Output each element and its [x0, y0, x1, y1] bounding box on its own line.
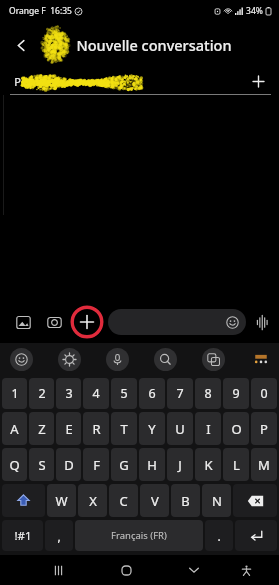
- button[interactable]: Accessibility: [234, 558, 258, 582]
- button[interactable]: C: [109, 484, 138, 517]
- staticText: 6: [148, 385, 156, 402]
- staticText: L: [233, 456, 240, 474]
- button[interactable]: Emoji: [223, 313, 241, 331]
- staticText: !#1: [14, 528, 32, 544]
- button[interactable]: X: [78, 484, 107, 517]
- button[interactable]: Z: [29, 412, 54, 445]
- staticText: 7: [176, 385, 184, 402]
- staticText: 8: [204, 385, 212, 402]
- staticText: 2: [38, 385, 46, 402]
- staticText: 1: [11, 385, 19, 402]
- staticText: ,: [57, 528, 61, 544]
- button[interactable]: settings: [58, 348, 81, 371]
- staticText: P: [260, 420, 268, 438]
- button[interactable]: Gallery: [10, 309, 36, 335]
- staticText: H: [147, 456, 157, 474]
- staticText: P: [14, 74, 21, 89]
- button[interactable]: !#1: [2, 520, 43, 551]
- button[interactable]: S: [29, 448, 54, 481]
- button[interactable]: 0: [251, 378, 277, 409]
- button[interactable]: 7: [167, 378, 193, 409]
- button[interactable]: R: [83, 412, 109, 445]
- staticText: 4: [92, 385, 100, 402]
- button[interactable]: More keyboard options: [250, 349, 272, 371]
- button[interactable]: Q: [2, 448, 27, 481]
- staticText: X: [89, 492, 97, 510]
- staticText: Z: [38, 420, 46, 438]
- button[interactable]: K: [195, 448, 221, 481]
- button[interactable]: Back: [6, 30, 36, 60]
- staticText: E: [65, 420, 73, 438]
- button[interactable]: T: [111, 412, 137, 445]
- staticText: M: [258, 456, 270, 474]
- button[interactable]: Shift: [2, 484, 45, 517]
- button[interactable]: U: [167, 412, 193, 445]
- button[interactable]: Y: [139, 412, 165, 445]
- button[interactable]: Recents: [45, 557, 71, 583]
- button[interactable]: W: [47, 484, 76, 517]
- staticText: O: [231, 420, 242, 438]
- button[interactable]: 5: [111, 378, 137, 409]
- button[interactable]: 6: [139, 378, 165, 409]
- button[interactable]: E: [56, 412, 81, 445]
- button[interactable]: 1: [2, 378, 27, 409]
- staticText: I: [206, 420, 211, 438]
- button[interactable]: Space: [75, 520, 203, 551]
- button[interactable]: G: [111, 448, 137, 481]
- staticText: J: [178, 456, 182, 474]
- button[interactable]: Emoji: [108, 309, 246, 335]
- button[interactable]: B: [171, 484, 200, 517]
- button[interactable]: N: [202, 484, 231, 517]
- button[interactable]: Voice message: [250, 310, 274, 334]
- button[interactable]: More attachments: [70, 305, 104, 339]
- staticText: R: [92, 420, 101, 438]
- staticText: W: [55, 492, 68, 510]
- staticText: 0: [260, 385, 268, 402]
- button[interactable]: 3: [56, 378, 81, 409]
- button[interactable]: mic: [106, 348, 129, 371]
- button[interactable]: 2: [29, 378, 54, 409]
- button[interactable]: V: [140, 484, 169, 517]
- staticText: G: [119, 456, 129, 474]
- button[interactable]: F: [83, 448, 109, 481]
- button[interactable]: P: [0, 68, 246, 94]
- button[interactable]: L: [223, 448, 249, 481]
- button[interactable]: 9: [223, 378, 249, 409]
- button[interactable]: emoji: [10, 348, 33, 371]
- button[interactable]: Add recipient: [246, 69, 270, 93]
- button[interactable]: I: [195, 412, 221, 445]
- staticText: Orange F 16:35: [9, 5, 72, 17]
- button[interactable]: search: [154, 348, 177, 371]
- staticText: Y: [148, 420, 156, 438]
- button[interactable]: Enter: [235, 520, 277, 551]
- button[interactable]: J: [167, 448, 193, 481]
- staticText: V: [151, 492, 159, 510]
- button[interactable]: D: [56, 448, 81, 481]
- button[interactable]: Home: [113, 557, 139, 583]
- button[interactable]: ,: [45, 520, 73, 551]
- button[interactable]: P: [251, 412, 277, 445]
- staticText: U: [175, 420, 185, 438]
- button[interactable]: 4: [83, 378, 109, 409]
- button[interactable]: 8: [195, 378, 221, 409]
- button[interactable]: .: [205, 520, 233, 551]
- button[interactable]: Camera: [41, 309, 67, 335]
- staticText: T: [120, 420, 128, 438]
- button[interactable]: Hide keyboard: [181, 557, 207, 583]
- staticText: Français (FR): [111, 529, 167, 542]
- staticText: S: [38, 456, 46, 474]
- staticText: Nouvelle conversation: [76, 35, 232, 55]
- button[interactable]: O: [223, 412, 249, 445]
- button[interactable]: M: [251, 448, 277, 481]
- staticText: N: [212, 492, 222, 510]
- button[interactable]: A: [2, 412, 27, 445]
- staticText: D: [64, 456, 74, 474]
- button[interactable]: translate: [202, 348, 225, 371]
- staticText: B: [181, 492, 190, 510]
- staticText: C: [119, 492, 128, 510]
- staticText: 9: [232, 385, 240, 402]
- button[interactable]: H: [139, 448, 165, 481]
- button[interactable]: Backspace: [233, 484, 277, 517]
- staticText: Q: [9, 456, 20, 474]
- staticText: .: [217, 528, 221, 544]
